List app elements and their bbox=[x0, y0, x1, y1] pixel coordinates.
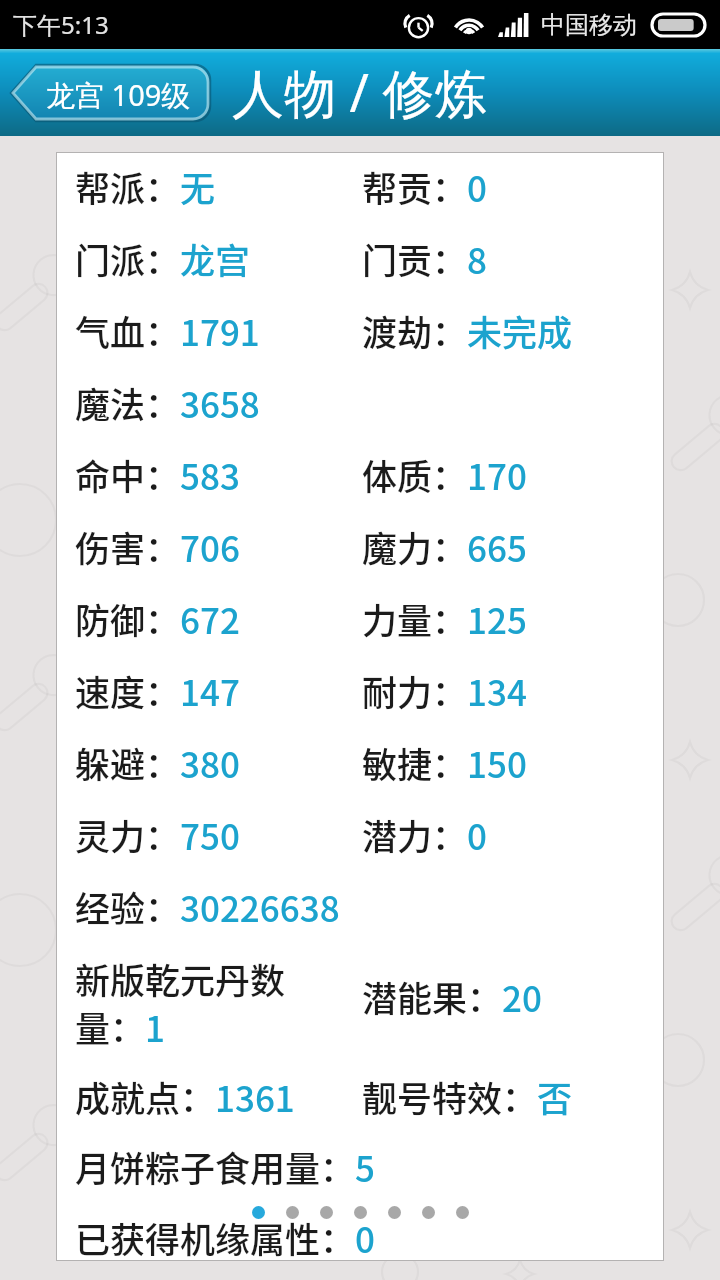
staticText: 帮贡：0 bbox=[362, 161, 487, 212]
staticText: 经验：30226638 bbox=[75, 881, 340, 932]
staticText: 速度：147 bbox=[75, 665, 240, 716]
staticText: 新版乾元丹数 bbox=[75, 953, 286, 1004]
staticText: 防御：672 bbox=[75, 593, 240, 644]
staticText: 魔力：665 bbox=[362, 521, 527, 572]
staticText: 门贡：8 bbox=[362, 233, 487, 284]
staticText: 力量：125 bbox=[362, 593, 527, 644]
staticText: 潜能果：20 bbox=[362, 971, 542, 1022]
staticText: 月饼粽子食用量：5 bbox=[75, 1141, 375, 1192]
staticText: 成就点：1361 bbox=[75, 1071, 295, 1122]
staticText: 躲避：380 bbox=[75, 737, 240, 788]
button[interactable]: Page 1 bbox=[252, 1206, 265, 1219]
button[interactable]: Page 7 bbox=[456, 1206, 469, 1219]
button[interactable]: Page 4 bbox=[354, 1206, 367, 1219]
staticText: 伤害：706 bbox=[75, 521, 240, 572]
staticText: 门派：龙宫 bbox=[75, 233, 251, 284]
staticText: 魔法：3658 bbox=[75, 377, 260, 428]
staticText: 人物 / 修炼 bbox=[232, 56, 487, 127]
staticText: 潜力：0 bbox=[362, 809, 487, 860]
staticText: 中国移动 bbox=[541, 10, 637, 40]
staticText: 体质：170 bbox=[362, 449, 527, 500]
button[interactable]: Back bbox=[10, 64, 211, 122]
staticText: 灵力：750 bbox=[75, 809, 240, 860]
staticText: 命中：583 bbox=[75, 449, 240, 500]
staticText: 敏捷：150 bbox=[362, 737, 527, 788]
staticText: 耐力：134 bbox=[362, 665, 527, 716]
staticText: 量：1 bbox=[75, 1001, 165, 1052]
staticText: 气血：1791 bbox=[75, 305, 260, 356]
staticText: 下午5:13 bbox=[13, 8, 109, 41]
button[interactable]: Page 3 bbox=[320, 1206, 333, 1219]
staticText: 已获得机缘属性：0 bbox=[75, 1212, 375, 1263]
staticText: 龙宫 109级 bbox=[46, 75, 191, 115]
staticText: 帮派：无 bbox=[75, 161, 216, 212]
button[interactable]: Page 2 bbox=[286, 1206, 299, 1219]
button[interactable]: Page 6 bbox=[422, 1206, 435, 1219]
staticText: 靓号特效：否 bbox=[362, 1071, 573, 1122]
staticText: 渡劫：未完成 bbox=[362, 305, 573, 356]
button[interactable]: Page 5 bbox=[388, 1206, 401, 1219]
